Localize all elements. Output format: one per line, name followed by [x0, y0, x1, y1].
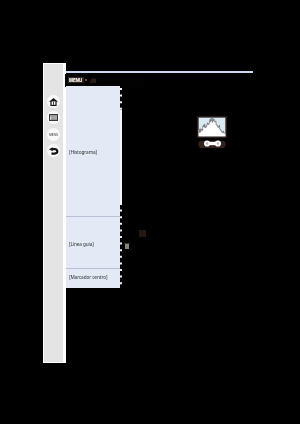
button[interactable]: Back: [47, 144, 60, 157]
staticText: MENU: [49, 133, 59, 137]
button[interactable]: Menu: [47, 128, 60, 141]
button[interactable]: Display: [47, 111, 60, 124]
staticText: [Marcador centro]: [69, 274, 108, 280]
button[interactable]: [Marcador centro]: [66, 269, 120, 288]
staticText: [Histograma]: [69, 149, 97, 155]
button[interactable]: Home: [47, 95, 60, 108]
staticText: [Línea guía]: [69, 241, 94, 247]
button[interactable]: Monitor settings: [90, 77, 97, 84]
staticText: MENU: [69, 77, 83, 83]
button[interactable]: [Histograma]: [66, 86, 120, 216]
button[interactable]: MENU: [68, 77, 84, 83]
button[interactable]: [Línea guía]: [66, 217, 120, 268]
button[interactable]: Histogram preview: [195, 114, 235, 154]
